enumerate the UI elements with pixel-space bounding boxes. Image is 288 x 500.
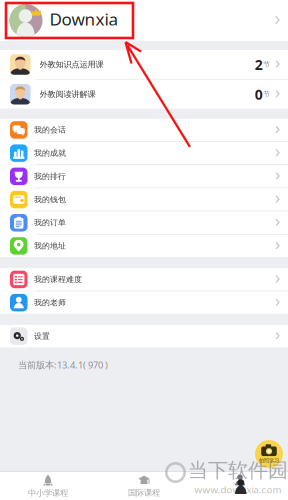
button[interactable]: 我的课程难度 — [0, 268, 288, 291]
button[interactable]: Downxia — [0, 0, 288, 41]
staticText: 我的地址 — [34, 241, 66, 251]
staticText: www.downxia.com — [194, 483, 281, 496]
staticText: 节 — [263, 90, 270, 98]
staticText: 当前版本:13.4.1( 970 ) — [18, 358, 108, 371]
staticText: 2 — [255, 55, 263, 74]
staticText: 我的老师 — [34, 298, 66, 308]
staticText: 当下软件园 — [188, 458, 288, 483]
button[interactable]: 我的钱包 — [0, 188, 288, 211]
staticText: 外教阅读讲解课 — [39, 89, 95, 99]
staticText: 我的成就 — [34, 148, 66, 158]
staticText: 我的会话 — [34, 125, 66, 135]
staticText: 中小学课程 — [28, 488, 68, 498]
button[interactable]: 国际课程 — [96, 469, 192, 500]
staticText: Downxia — [49, 7, 118, 31]
staticText: 我的钱包 — [34, 195, 66, 204]
button[interactable]: 拍照学习 — [255, 440, 283, 468]
button[interactable]: 我的老师 — [0, 291, 288, 314]
staticText: 我的课程难度 — [34, 274, 82, 284]
button[interactable]: 我的订单 — [0, 211, 288, 234]
staticText: 节 — [263, 60, 270, 69]
staticText: 0 — [255, 85, 263, 104]
button[interactable]: 外教知识点运用课 — [0, 50, 288, 79]
staticText: 国际课程 — [128, 487, 160, 498]
staticText: 我的订单 — [34, 218, 66, 228]
button[interactable]: 我的会话 — [0, 119, 288, 141]
button[interactable] — [192, 468, 288, 500]
staticText: 设置 — [34, 331, 50, 341]
staticText: 我的排行 — [34, 171, 66, 181]
button[interactable]: 外教阅读讲解课 — [0, 80, 288, 109]
staticText: 拍照学习 — [259, 457, 279, 464]
button[interactable]: 设置 — [0, 325, 288, 347]
staticText: 外教知识点运用课 — [39, 59, 103, 70]
button[interactable]: 我的成就 — [0, 142, 288, 164]
button[interactable]: 我的排行 — [0, 165, 288, 188]
button[interactable]: 我的地址 — [0, 235, 288, 257]
button[interactable]: 中小学课程 — [0, 469, 96, 500]
